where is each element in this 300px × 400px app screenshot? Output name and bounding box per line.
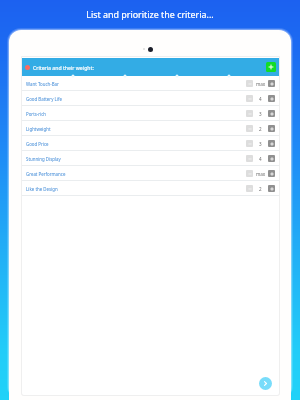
button[interactable]: Decrease weight: [246, 95, 253, 102]
button[interactable]: Decrease weight: [246, 155, 253, 162]
staticText: 4: [259, 156, 262, 162]
button[interactable]: Decrease weight: [246, 185, 253, 192]
staticText: 3: [259, 141, 262, 147]
button[interactable]: Increase weight: [268, 80, 275, 87]
button[interactable]: Increase weight: [268, 110, 275, 117]
staticText: max: [256, 81, 266, 87]
staticText: 3: [259, 111, 262, 117]
button[interactable]: Decrease weight: [246, 110, 253, 117]
staticText: List and prioritize the criteria...: [0, 8, 300, 20]
button[interactable]: Increase weight: [268, 140, 275, 147]
button[interactable]: Add criterion: [266, 62, 276, 72]
staticText: 4: [259, 96, 262, 102]
button[interactable]: Great Performance: [21, 166, 280, 181]
button[interactable]: Like the Design: [21, 181, 280, 196]
button[interactable]: Increase weight: [268, 155, 275, 162]
button[interactable]: Decrease weight: [246, 125, 253, 132]
staticText: 2: [259, 126, 262, 132]
button[interactable]: Want Touch-Bar: [21, 76, 280, 91]
staticText: Good Battery Life: [26, 96, 62, 102]
button[interactable]: Decrease weight: [246, 140, 253, 147]
staticText: Like the Design: [26, 186, 58, 192]
button[interactable]: Next: [259, 377, 272, 390]
staticText: Criteria and their weight:: [33, 64, 94, 71]
staticText: max: [256, 171, 266, 177]
staticText: Ports-rich: [26, 111, 46, 117]
staticText: Stunning Display: [26, 156, 61, 162]
staticText: 2: [259, 186, 262, 192]
button[interactable]: Increase weight: [268, 170, 275, 177]
button[interactable]: Increase weight: [268, 95, 275, 102]
button[interactable]: Good Price: [21, 136, 280, 151]
staticText: Good Price: [26, 141, 49, 147]
staticText: Lightweight: [26, 126, 51, 132]
button[interactable]: Stunning Display: [21, 151, 280, 166]
button[interactable]: Increase weight: [268, 185, 275, 192]
button[interactable]: Lightweight: [21, 121, 280, 136]
staticText: Great Performance: [26, 171, 66, 177]
button[interactable]: Decrease weight: [246, 170, 253, 177]
button[interactable]: Decrease weight: [246, 80, 253, 87]
staticText: Want Touch-Bar: [26, 81, 59, 87]
button[interactable]: Criteria and their weight:: [21, 58, 280, 76]
button[interactable]: Ports-rich: [21, 106, 280, 121]
button[interactable]: Increase weight: [268, 125, 275, 132]
button[interactable]: Good Battery Life: [21, 91, 280, 106]
